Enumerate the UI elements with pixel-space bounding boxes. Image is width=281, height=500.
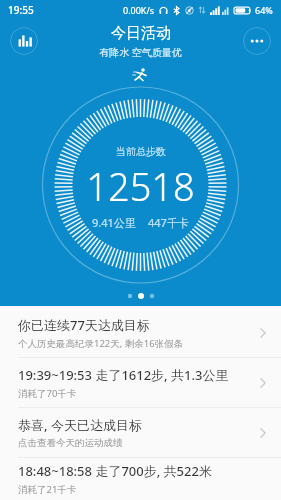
staticText: 消耗了21千卡 bbox=[18, 483, 77, 496]
staticText: 447千卡 bbox=[148, 215, 189, 230]
staticText: 18:48~18:58 走了700步, 共522米 bbox=[18, 462, 212, 480]
staticText: 消耗了70千卡 bbox=[18, 387, 77, 400]
staticText: 12518 bbox=[86, 160, 195, 212]
button[interactable]: 19:39~19:53 走了1612步, 共1.3公里 bbox=[0, 358, 281, 407]
button[interactable]: 18:48~18:58 走了700步, 共522米 bbox=[0, 458, 281, 500]
staticText: 今日活动 bbox=[111, 24, 171, 43]
staticText: 9.41公里 bbox=[92, 215, 136, 230]
staticText: 个人历史最高纪录122天, 剩余16张假条 bbox=[18, 337, 184, 350]
staticText: 恭喜, 今天已达成目标 bbox=[18, 416, 142, 434]
button[interactable]: More options bbox=[243, 27, 271, 55]
staticText: 64% bbox=[255, 4, 273, 16]
button[interactable]: 你已连续77天达成目标 bbox=[0, 308, 281, 357]
staticText: 19:55 bbox=[8, 3, 34, 17]
staticText: 你已连续77天达成目标 bbox=[18, 316, 150, 334]
staticText: 有降水 空气质量优 bbox=[99, 45, 182, 59]
staticText: 点击查看今天的运动成绩 bbox=[18, 437, 123, 449]
staticText: 0.00K/s bbox=[123, 4, 155, 16]
button[interactable]: Statistics bbox=[10, 27, 38, 55]
staticText: 当前总步数 bbox=[116, 145, 166, 158]
button[interactable]: 恭喜, 今天已达成目标 bbox=[0, 408, 281, 457]
staticText: 19:39~19:53 走了1612步, 共1.3公里 bbox=[18, 366, 229, 384]
